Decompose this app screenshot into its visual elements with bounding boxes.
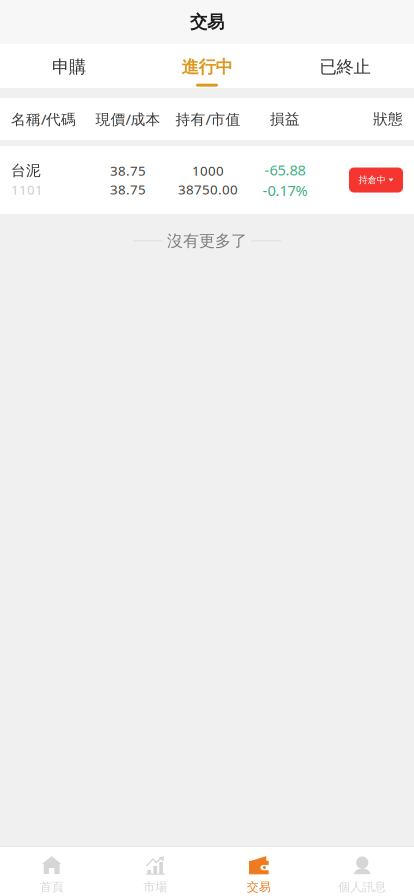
staticText: 首頁 [40,880,64,894]
staticText: 38.75 [110,162,146,179]
staticText: 持有/市值 [175,109,240,129]
staticText: 38750.00 [178,180,238,198]
staticText: 申購 [52,56,86,78]
staticText: 已終止 [319,56,370,78]
button[interactable]: 市場 [103,847,207,896]
staticText: -0.17% [262,180,307,200]
staticText: 持倉中 [358,174,385,186]
button[interactable]: 首頁 [0,847,103,896]
staticText: 38.75 [110,180,146,198]
button[interactable]: 個人訊息 [310,847,414,896]
staticText: 1000 [192,162,224,179]
staticText: 交易 [247,880,271,894]
button[interactable]: 持倉中 [349,167,403,192]
button[interactable]: 進行中 [138,40,276,92]
staticText: 台泥 [11,162,41,180]
button[interactable]: 申購 [0,40,138,92]
staticText: 名稱/代碼 [11,109,76,129]
button[interactable]: 已終止 [276,40,414,92]
staticText: 1101 [11,181,43,198]
staticText: 現價/成本 [95,109,160,129]
staticText: 個人訊息 [338,880,386,894]
staticText: 進行中 [181,56,232,78]
staticText: 交易 [190,11,224,33]
staticText: -65.88 [264,160,305,179]
staticText: 損益 [270,110,300,128]
button[interactable]: 交易 [207,847,310,896]
staticText: 沒有更多了 [167,231,247,251]
staticText: 市場 [143,880,167,894]
staticText: 狀態 [373,110,403,128]
